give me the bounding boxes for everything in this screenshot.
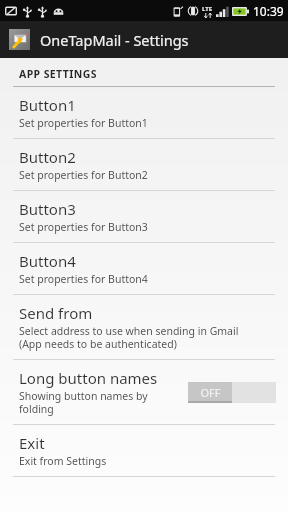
staticText: Set properties for Button4 <box>19 272 148 286</box>
staticText: OneTapMail - Settings <box>40 30 189 50</box>
staticText: Select address to use when sending in Gm… <box>19 324 239 351</box>
button[interactable]: Long button names toggle, off <box>188 382 276 403</box>
button[interactable]: Long button names <box>0 360 288 424</box>
staticText: OFF <box>200 385 221 400</box>
staticText: Exit <box>19 433 45 453</box>
staticText: Set properties for Button1 <box>19 116 148 130</box>
staticText: 10:39 <box>253 3 284 19</box>
button[interactable]: Button1 <box>0 87 288 138</box>
staticText: LTE <box>202 5 213 13</box>
staticText: Button3 <box>19 199 76 219</box>
staticText: Button4 <box>19 251 76 271</box>
staticText: Button2 <box>19 147 76 167</box>
button[interactable]: Button2 <box>0 139 288 190</box>
staticText: Exit from Settings <box>19 454 107 468</box>
button[interactable]: Send from <box>0 295 288 359</box>
staticText: Send from <box>19 303 93 323</box>
staticText: Button1 <box>19 95 76 115</box>
staticText: APP SETTINGS <box>19 67 97 81</box>
staticText: Set properties for Button3 <box>19 220 148 234</box>
staticText: Set properties for Button2 <box>19 168 148 182</box>
staticText: Showing button names by folding <box>19 389 148 416</box>
button[interactable]: Button3 <box>0 191 288 242</box>
staticText: Long button names <box>19 368 158 388</box>
button[interactable]: Exit <box>0 425 288 476</box>
button[interactable]: Button4 <box>0 243 288 294</box>
